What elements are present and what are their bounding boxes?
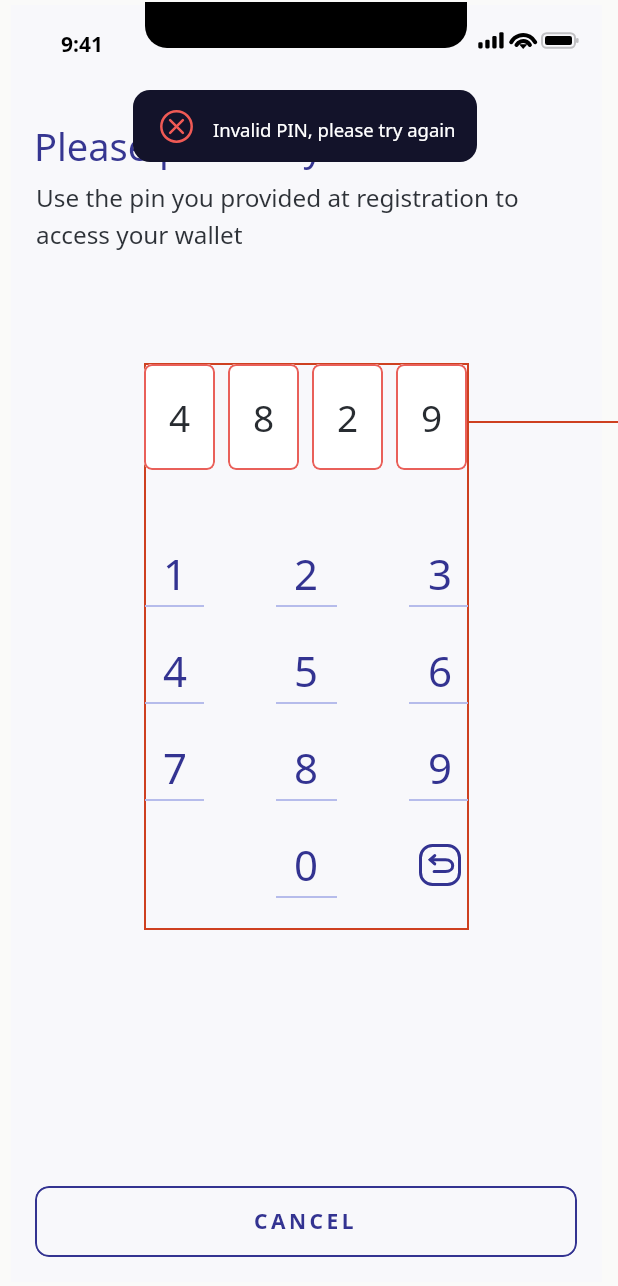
other: Status (467, 30, 590, 50)
staticText: Invalid PIN, please try again (213, 117, 456, 142)
button[interactable]: 6 (401, 640, 480, 718)
button[interactable]: 5 (266, 640, 347, 718)
button[interactable]: CANCEL (35, 1186, 577, 1257)
staticText: 2 (337, 392, 359, 442)
staticText: 5 (294, 642, 319, 699)
staticText: 8 (253, 392, 275, 442)
button[interactable]: 2 (312, 364, 383, 470)
button[interactable]: 2 (266, 543, 347, 621)
staticText: 0 (294, 836, 319, 893)
button[interactable]: 9 (401, 737, 480, 815)
staticText: 6 (428, 642, 453, 699)
staticText: 9 (421, 392, 443, 442)
button[interactable]: 8 (228, 364, 299, 470)
button[interactable]: 9 (396, 364, 467, 470)
button[interactable]: 4 (144, 364, 215, 470)
button[interactable]: 3 (401, 543, 480, 621)
staticText: 4 (163, 642, 188, 699)
button[interactable]: Invalid PIN, please try again (133, 90, 477, 162)
staticText: 8 (294, 739, 319, 796)
button[interactable]: 0 (266, 834, 347, 912)
staticText: Please provide your PIN (34, 120, 460, 172)
button[interactable]: 4 (136, 640, 215, 718)
staticText: 2 (294, 545, 319, 602)
staticText: Use the pin you provided at registration… (36, 181, 519, 251)
staticText: 7 (163, 739, 188, 796)
button[interactable]: 7 (136, 737, 215, 815)
staticText: CANCEL (254, 1207, 358, 1236)
staticText: 1 (163, 545, 188, 602)
button[interactable]: 1 (136, 543, 215, 621)
staticText: 9:41 (61, 30, 103, 59)
staticText: 3 (428, 545, 453, 602)
staticText: 9 (428, 739, 453, 796)
button[interactable]: Backspace (401, 834, 480, 912)
button[interactable]: 8 (266, 737, 347, 815)
staticText: 4 (169, 392, 191, 442)
